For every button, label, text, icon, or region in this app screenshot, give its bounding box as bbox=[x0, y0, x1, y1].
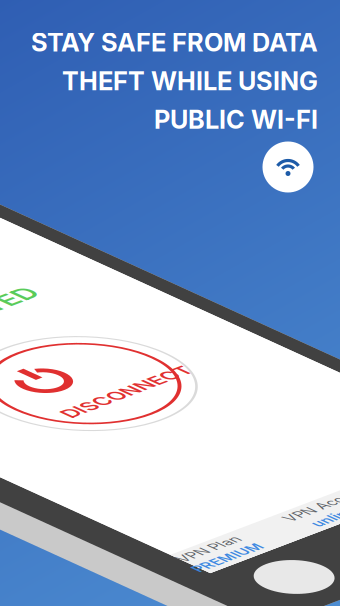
staticText: PUBLIC WI-FI bbox=[154, 104, 318, 135]
staticText: THEFT WHILE USING bbox=[62, 66, 318, 96]
staticText: STAY SAFE FROM DATA bbox=[31, 27, 318, 58]
